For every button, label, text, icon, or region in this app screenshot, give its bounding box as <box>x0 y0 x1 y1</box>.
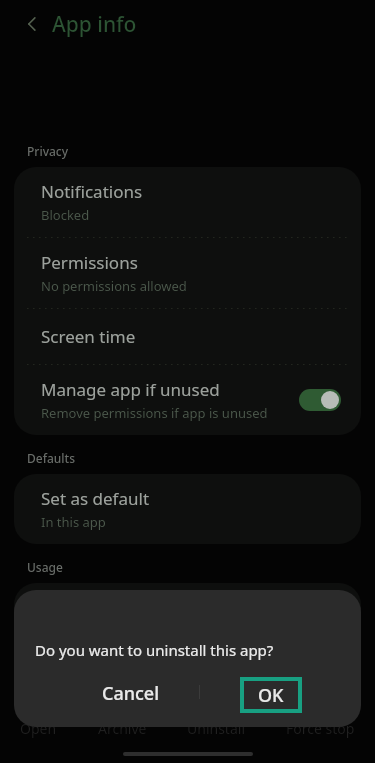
staticText: App info <box>52 10 137 39</box>
staticText: Screen time <box>41 325 136 348</box>
staticText: No permissions allowed <box>41 277 187 295</box>
button[interactable]: OK <box>240 677 302 713</box>
button[interactable]: Set as default <box>14 474 361 544</box>
staticText: Set as default <box>41 487 150 510</box>
staticText: Manage app if unused <box>41 378 220 401</box>
staticText: Open <box>20 719 57 738</box>
button[interactable]: Manage app if unused <box>299 389 341 411</box>
staticText: In this app <box>41 513 106 531</box>
staticText: Privacy <box>27 143 69 159</box>
staticText: Usage <box>27 559 63 575</box>
button[interactable]: Notifications <box>14 167 361 237</box>
button[interactable]: Manage app if unused <box>14 365 361 435</box>
staticText: Archive <box>98 719 147 738</box>
button[interactable]: Mobile data <box>14 583 361 653</box>
staticText: Remove permissions if app is unused <box>41 404 268 422</box>
button[interactable]: Screen time <box>14 309 361 364</box>
staticText: Uninstall <box>187 719 245 738</box>
staticText: Cancel <box>102 681 160 706</box>
staticText: Unrestricted <box>41 693 117 711</box>
staticText: Blocked <box>41 206 90 224</box>
staticText: OK <box>258 683 284 708</box>
staticText: Permissions <box>41 251 138 274</box>
button[interactable]: Back <box>18 10 46 38</box>
button[interactable]: Permissions <box>14 238 361 308</box>
button[interactable]: Cancel <box>74 675 188 711</box>
staticText: Force stop <box>286 719 355 738</box>
button[interactable]: Battery <box>14 654 361 724</box>
staticText: Notifications <box>41 180 143 203</box>
staticText: Defaults <box>27 450 76 466</box>
staticText: Do you want to uninstall this app? <box>35 640 274 660</box>
